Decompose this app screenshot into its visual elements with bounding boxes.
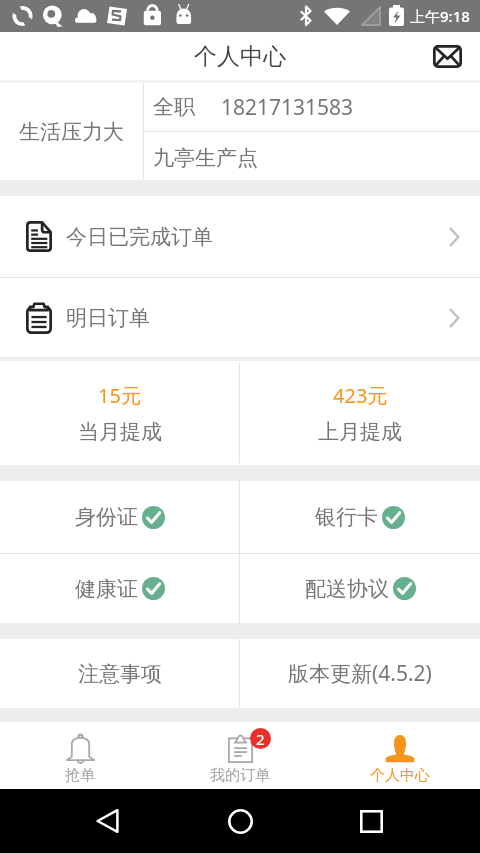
staticText: 银行卡 bbox=[315, 504, 378, 530]
button[interactable]: Recents bbox=[349, 799, 393, 843]
staticText: 18217131583 bbox=[221, 93, 354, 122]
button[interactable]: 健康证 bbox=[0, 554, 239, 623]
staticText: 版本更新(4.5.2) bbox=[288, 659, 432, 688]
staticText: 生活压力大 bbox=[19, 119, 124, 145]
button[interactable]: 今日已完成订单 bbox=[0, 196, 480, 277]
button[interactable]: 15元 bbox=[0, 361, 239, 465]
staticText: 健康证 bbox=[75, 576, 138, 602]
button[interactable]: 注意事项 bbox=[0, 639, 239, 708]
button[interactable]: 2 bbox=[160, 722, 320, 789]
staticText: 明日订单 bbox=[66, 305, 150, 331]
staticText: 上午9:18 bbox=[410, 6, 470, 26]
button[interactable]: 版本更新(4.5.2) bbox=[240, 639, 480, 708]
staticText: 全职 bbox=[153, 94, 195, 120]
staticText: 2 bbox=[256, 729, 265, 749]
button[interactable]: 明日订单 bbox=[0, 278, 480, 357]
button[interactable]: Messages bbox=[423, 32, 471, 80]
staticText: 423元 bbox=[333, 382, 388, 409]
staticText: 个人中心 bbox=[370, 766, 430, 785]
staticText: 当月提成 bbox=[78, 419, 162, 445]
button[interactable]: 423元 bbox=[240, 361, 480, 465]
staticText: 15元 bbox=[98, 382, 141, 409]
staticText: 上月提成 bbox=[318, 419, 402, 445]
staticText: 我的订单 bbox=[210, 766, 270, 785]
staticText: 注意事项 bbox=[78, 661, 162, 687]
button[interactable]: 抢单 bbox=[0, 722, 160, 789]
button[interactable]: 配送协议 bbox=[240, 554, 480, 623]
staticText: 个人中心 bbox=[194, 42, 286, 71]
staticText: 身份证 bbox=[75, 504, 138, 530]
staticText: 抢单 bbox=[65, 766, 95, 785]
staticText: 配送协议 bbox=[305, 576, 389, 602]
button[interactable]: 个人中心 bbox=[320, 722, 480, 789]
staticText: 九亭生产点 bbox=[153, 145, 258, 171]
button[interactable]: Home bbox=[218, 799, 262, 843]
button[interactable]: 身份证 bbox=[0, 481, 239, 553]
button[interactable]: Back bbox=[85, 799, 129, 843]
staticText: 今日已完成订单 bbox=[66, 224, 213, 250]
button[interactable]: 银行卡 bbox=[240, 481, 480, 553]
